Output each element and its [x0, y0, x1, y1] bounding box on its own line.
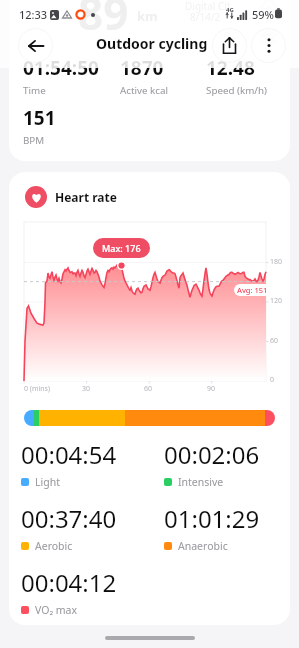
- staticText: 180: [270, 257, 283, 267]
- staticText: Aerobic: [35, 539, 73, 553]
- staticText: Heart rate: [55, 189, 117, 205]
- staticText: Outdoor cycling: [96, 34, 208, 53]
- staticText: BPM: [23, 134, 45, 147]
- staticText: 0 (mins): [24, 384, 51, 394]
- staticText: 59%: [252, 7, 274, 22]
- button[interactable]: Back: [18, 28, 53, 63]
- staticText: 151: [23, 105, 56, 131]
- staticText: VO₂ max: [35, 603, 78, 617]
- staticText: 00:37:40: [21, 502, 117, 535]
- staticText: 59%: [252, 7, 274, 22]
- staticText: 4G: [226, 6, 234, 14]
- staticText: 120: [270, 296, 283, 306]
- staticText: 01:01:29: [164, 502, 260, 535]
- staticText: Active kcal: [120, 84, 169, 97]
- staticText: 30: [82, 384, 91, 394]
- staticText: 12:33: [19, 7, 48, 22]
- staticText: 00:04:12: [21, 566, 117, 599]
- staticText: 00:04:54: [21, 438, 117, 471]
- staticText: 90: [207, 384, 216, 394]
- staticText: Digital Cit: [185, 0, 231, 13]
- staticText: km: [137, 7, 158, 25]
- staticText: 89: [78, 0, 129, 43]
- staticText: 8/14/2: [190, 10, 221, 24]
- staticText: 01:54:50: [23, 55, 99, 81]
- button[interactable]: More options: [251, 28, 286, 63]
- staticText: 60: [144, 384, 153, 394]
- button[interactable]: Share: [212, 28, 247, 63]
- button[interactable]: More options: [251, 28, 286, 63]
- staticText: Max: 176: [102, 242, 141, 254]
- staticText: 4G: [226, 6, 234, 14]
- staticText: Outdoor cycling: [96, 34, 208, 53]
- staticText: 12:33: [19, 7, 48, 22]
- staticText: 0: [270, 375, 275, 385]
- staticText: Anaerobic: [178, 539, 228, 553]
- staticText: Intensive: [178, 475, 224, 489]
- staticText: 12.48: [206, 55, 255, 81]
- staticText: Time: [23, 84, 46, 97]
- staticText: Speed (km/h): [206, 84, 267, 97]
- button[interactable]: Back: [18, 28, 53, 63]
- button[interactable]: Share: [212, 28, 247, 63]
- staticText: 60: [270, 336, 279, 346]
- staticText: Light: [35, 475, 60, 489]
- staticText: Avg: 151: [237, 285, 268, 295]
- staticText: 1870: [120, 55, 164, 81]
- staticText: 00:02:06: [164, 438, 260, 471]
